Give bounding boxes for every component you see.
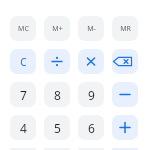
button[interactable]: M-: [78, 16, 104, 41]
button[interactable]: 4: [10, 115, 36, 140]
button[interactable]: 8: [44, 82, 70, 107]
staticText: 4: [20, 120, 27, 136]
staticText: 7: [20, 87, 27, 103]
button[interactable]: Backspace: [112, 49, 138, 74]
button[interactable]: 7: [10, 82, 36, 107]
staticText: 5: [54, 120, 61, 136]
button[interactable]: M+: [44, 16, 70, 41]
button[interactable]: 9: [78, 82, 104, 107]
staticText: M+: [52, 24, 63, 34]
button[interactable]: 5: [44, 115, 70, 140]
staticText: 6: [88, 120, 95, 136]
button[interactable]: Divide: [44, 49, 70, 74]
staticText: MR: [120, 24, 131, 34]
button[interactable]: MC: [10, 16, 36, 41]
button[interactable]: MR: [112, 16, 138, 41]
button[interactable]: C: [10, 49, 36, 74]
button[interactable]: Plus: [112, 115, 138, 140]
staticText: 8: [54, 87, 61, 103]
button[interactable]: Multiply: [78, 49, 104, 74]
button[interactable]: 6: [78, 115, 104, 140]
staticText: C: [20, 55, 27, 69]
button[interactable]: Minus: [112, 82, 138, 107]
staticText: 9: [88, 87, 95, 103]
staticText: MC: [18, 24, 29, 34]
staticText: M-: [87, 24, 96, 34]
